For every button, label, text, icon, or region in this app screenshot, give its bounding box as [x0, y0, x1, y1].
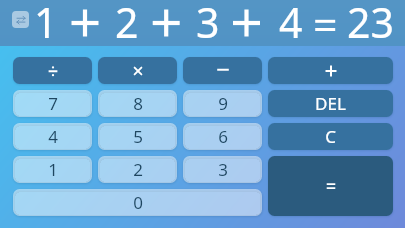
staticText: 1 [34, 0, 58, 40]
staticText: 7 [48, 92, 58, 115]
staticText: 4 [48, 125, 58, 148]
button[interactable]: 8 [98, 90, 177, 117]
staticText: 5 [133, 125, 143, 148]
staticText: 1 [48, 158, 58, 181]
staticText: 2 [115, 0, 139, 40]
button[interactable]: DEL [268, 90, 393, 117]
button[interactable]: 0 [13, 189, 262, 216]
button[interactable]: Divide [13, 57, 92, 84]
staticText: 23 [347, 0, 394, 40]
staticText: C [325, 125, 336, 148]
staticText: 0 [133, 191, 143, 214]
button[interactable]: 3 [183, 156, 262, 183]
staticText: 4 [279, 0, 303, 40]
button[interactable]: 9 [183, 90, 262, 117]
button[interactable]: Switch input method [12, 11, 29, 28]
button[interactable]: 1 [13, 156, 92, 183]
staticText: 8 [133, 92, 143, 115]
staticText: 9 [218, 92, 228, 115]
staticText: 2 [133, 158, 143, 181]
button[interactable]: 2 [98, 156, 177, 183]
button[interactable]: 5 [98, 123, 177, 150]
button[interactable]: 6 [183, 123, 262, 150]
staticText: 3 [218, 158, 228, 181]
button[interactable]: Equals [268, 156, 393, 216]
staticText: DEL [315, 92, 346, 115]
staticText: 3 [196, 0, 220, 40]
button[interactable]: C [268, 123, 393, 150]
staticText: 6 [218, 125, 228, 148]
button[interactable]: Plus [268, 57, 393, 84]
button[interactable]: 4 [13, 123, 92, 150]
button[interactable]: Multiply [98, 57, 177, 84]
button[interactable]: 7 [13, 90, 92, 117]
button[interactable]: Minus [183, 57, 262, 84]
